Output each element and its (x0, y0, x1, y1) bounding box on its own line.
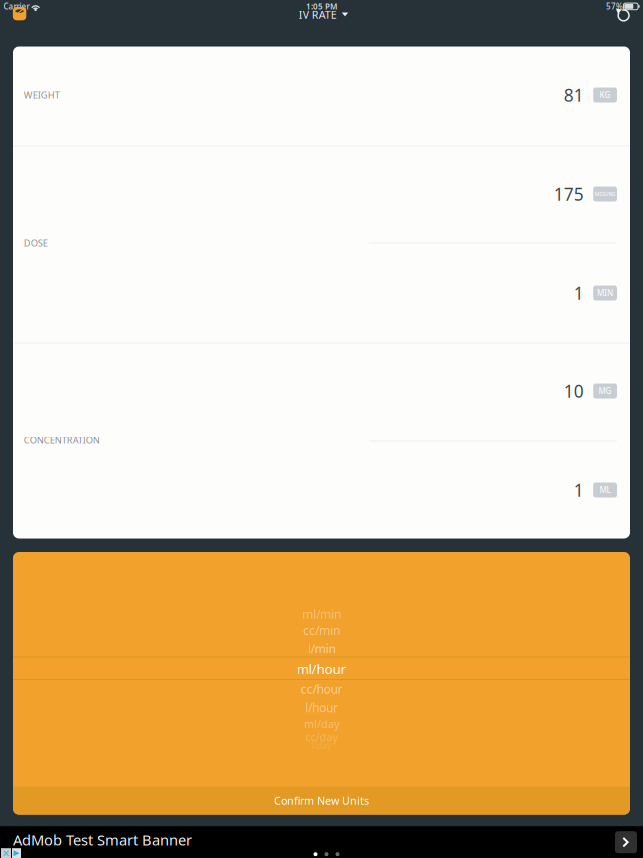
button[interactable]: Confirm New Units (13, 787, 630, 815)
staticText: MG (599, 386, 612, 396)
staticText: Confirm New Units (274, 793, 369, 808)
button[interactable]: AdMob Test Smart Banner (13, 831, 213, 849)
button[interactable]: 1 (26, 467, 617, 513)
staticText: DOSE (24, 237, 48, 249)
button[interactable]: IV RATE (299, 7, 348, 21)
button[interactable]: Next (615, 831, 637, 853)
staticText: l/min (307, 641, 335, 657)
button[interactable]: 81 (26, 72, 617, 118)
staticText: 57% (606, 1, 623, 12)
staticText: 1 (574, 281, 584, 304)
button[interactable]: Ad choices (12, 848, 21, 858)
button[interactable]: Close ad (1, 848, 11, 858)
staticText: AdMob Test Smart Banner (13, 830, 192, 850)
staticText: 1 (574, 478, 584, 501)
staticText: 10 (564, 379, 584, 402)
staticText: × (2, 845, 9, 858)
button[interactable]: 175 (26, 171, 617, 217)
staticText: cc/day (305, 730, 337, 744)
staticText: IV RATE (299, 7, 337, 22)
staticText: l/day (311, 739, 332, 751)
staticText: 81 (564, 83, 584, 106)
button[interactable]: 10 (26, 368, 617, 414)
staticText: WEIGHT (24, 89, 60, 101)
staticText: cc/min (303, 622, 340, 638)
staticText: MCG/KG (595, 190, 616, 198)
staticText: Carrier (4, 1, 30, 12)
staticText: MIN (597, 288, 613, 298)
staticText: 1:05 PM (306, 1, 337, 12)
staticText: ml/day (304, 717, 339, 731)
staticText: CONCENTRATION (24, 434, 100, 446)
staticText: cc/hour (300, 681, 342, 697)
staticText: ml/min (302, 606, 341, 622)
staticText: ML (600, 485, 611, 495)
staticText: ml/hour (296, 660, 346, 678)
button[interactable]: Reset (614, 5, 634, 25)
button[interactable]: Weight scale (13, 7, 26, 20)
button[interactable]: 1 (26, 270, 617, 316)
staticText: KG (600, 90, 611, 100)
staticText: 175 (554, 182, 584, 205)
staticText: l/hour (305, 699, 338, 715)
